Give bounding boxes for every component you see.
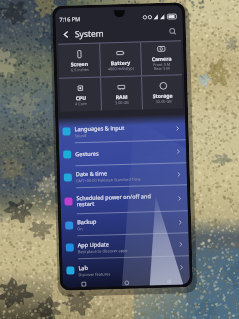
staticText: Date & time	[76, 169, 108, 178]
staticText: Gestures	[75, 150, 99, 158]
button[interactable]: Date & time	[59, 163, 187, 188]
staticText: CPU	[75, 94, 87, 101]
staticText: Backup	[77, 218, 97, 226]
staticText: Scheduled power on/off and restart	[76, 192, 152, 208]
staticText: Discover features	[78, 271, 111, 277]
staticText: System	[75, 27, 104, 40]
staticText: 6.5 inches	[71, 67, 89, 72]
staticText: Front 5 M Rear 5 M	[153, 62, 171, 72]
staticText: 4 Core	[75, 101, 87, 106]
button[interactable]: Lab	[62, 256, 190, 282]
staticText: Battery	[111, 59, 131, 66]
staticText: 3.00 GB	[115, 100, 129, 105]
button[interactable]: Backup	[61, 211, 188, 236]
button[interactable]: Search	[167, 25, 179, 38]
button[interactable]: Camera	[141, 41, 182, 75]
button[interactable]: Home	[106, 279, 148, 286]
button[interactable]: Back	[60, 28, 72, 41]
staticText: RAM	[115, 93, 128, 100]
staticText: On	[77, 226, 83, 231]
button[interactable]: App Update	[61, 233, 189, 259]
staticText: Sound	[75, 133, 87, 138]
staticText: Lab	[78, 264, 88, 272]
button[interactable]: CPU	[59, 78, 101, 112]
staticText: Best place to discover apps	[78, 248, 128, 254]
staticText: Screen	[71, 60, 89, 67]
button[interactable]: Recents	[63, 280, 106, 288]
staticText: Storage	[152, 92, 174, 99]
button[interactable]: Languages & input	[58, 117, 186, 143]
staticText: 32.00 GB	[156, 99, 172, 104]
staticText: GMT+05:00 Pakistan Standard Time	[76, 176, 141, 183]
button[interactable]: Back	[148, 278, 190, 285]
button[interactable]: Gestures	[59, 140, 186, 166]
staticText: App Update	[78, 240, 110, 249]
button[interactable]: Storage	[142, 75, 183, 109]
button[interactable]: Screen	[58, 44, 100, 78]
staticText: Camera	[151, 55, 172, 62]
staticText: 7:16 PM	[59, 15, 80, 23]
button[interactable]: Scheduled power on/off and restart	[60, 185, 188, 214]
button[interactable]: RAM	[101, 76, 142, 111]
staticText: 4000 mAh(typ)	[108, 66, 134, 71]
staticText: Languages & input	[74, 124, 125, 133]
button[interactable]: Battery	[100, 42, 141, 77]
